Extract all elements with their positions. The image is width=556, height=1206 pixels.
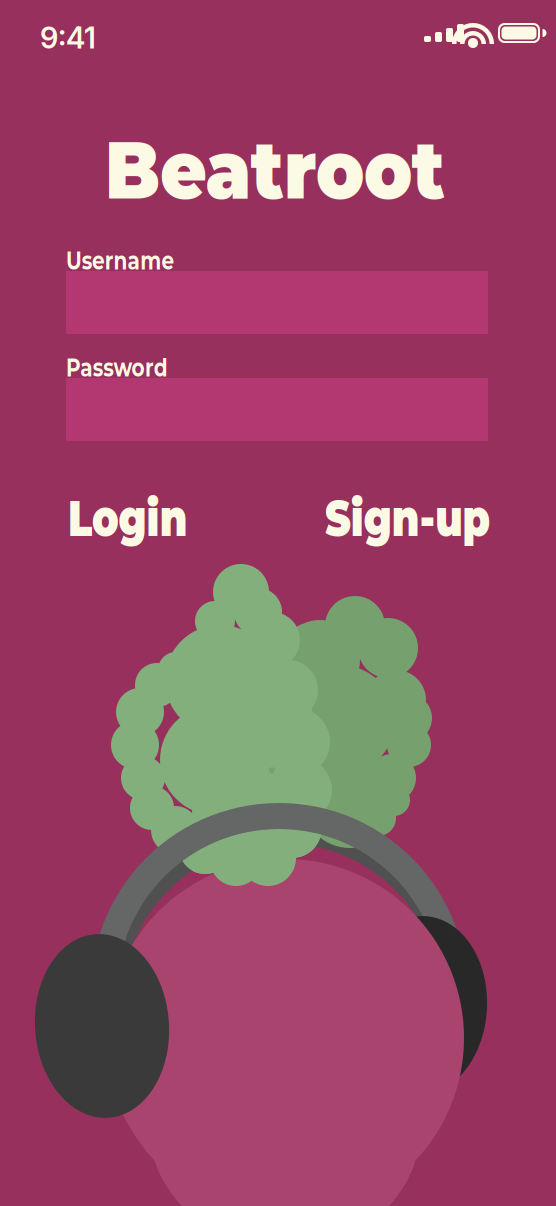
button[interactable]: Sign-up [325, 487, 537, 549]
staticText: Login [68, 487, 222, 549]
staticText: Sign-up [325, 487, 537, 549]
button[interactable]: Login [68, 487, 222, 549]
staticText: Password [66, 352, 195, 383]
staticText: 9:41 [40, 20, 96, 55]
staticText: Username [66, 245, 203, 276]
staticText: Beatroot [105, 121, 487, 218]
